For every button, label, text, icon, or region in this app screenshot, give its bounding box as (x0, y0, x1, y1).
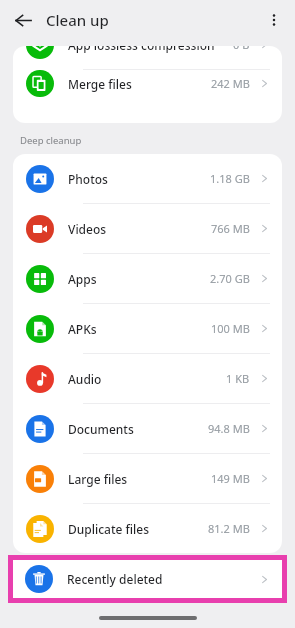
staticText: Audio (68, 371, 102, 387)
staticText: 81.2 MB (208, 521, 250, 536)
button[interactable]: Duplicate files (13, 504, 282, 553)
staticText: Clean up (46, 10, 109, 30)
button[interactable]: Photos (13, 154, 282, 203)
staticText: 149 MB (211, 471, 250, 486)
button[interactable]: Audio (13, 354, 282, 403)
staticText: 1 KB (226, 371, 250, 386)
staticText: App lossless compression (68, 46, 215, 53)
button[interactable]: Recently deleted (13, 560, 282, 598)
button[interactable]: Large files (13, 454, 282, 503)
staticText: Documents (68, 421, 134, 437)
staticText: Apps (68, 271, 97, 287)
staticText: 100 MB (211, 321, 250, 336)
staticText: 766 MB (211, 221, 250, 236)
staticText: Large files (68, 471, 128, 487)
staticText: Videos (68, 221, 107, 237)
button[interactable]: Merge files (13, 70, 282, 97)
staticText: Deep cleanup (20, 134, 82, 147)
staticText: Photos (68, 171, 108, 187)
staticText: 1.18 GB (210, 171, 250, 186)
staticText: 242 MB (211, 76, 250, 91)
button[interactable]: App lossless compression (13, 46, 282, 69)
staticText: 0 B (233, 46, 250, 52)
button[interactable]: Videos (13, 204, 282, 253)
button[interactable]: APKs (13, 304, 282, 353)
button[interactable]: More options (259, 5, 289, 35)
staticText: 94.8 MB (208, 421, 250, 436)
staticText: Recently deleted (67, 571, 163, 587)
staticText: 2.70 GB (210, 271, 250, 286)
button[interactable]: Back (8, 5, 38, 35)
button[interactable]: Apps (13, 254, 282, 303)
staticText: Merge files (68, 76, 132, 92)
staticText: Duplicate files (68, 521, 150, 537)
button[interactable]: Documents (13, 404, 282, 453)
staticText: APKs (68, 321, 97, 337)
